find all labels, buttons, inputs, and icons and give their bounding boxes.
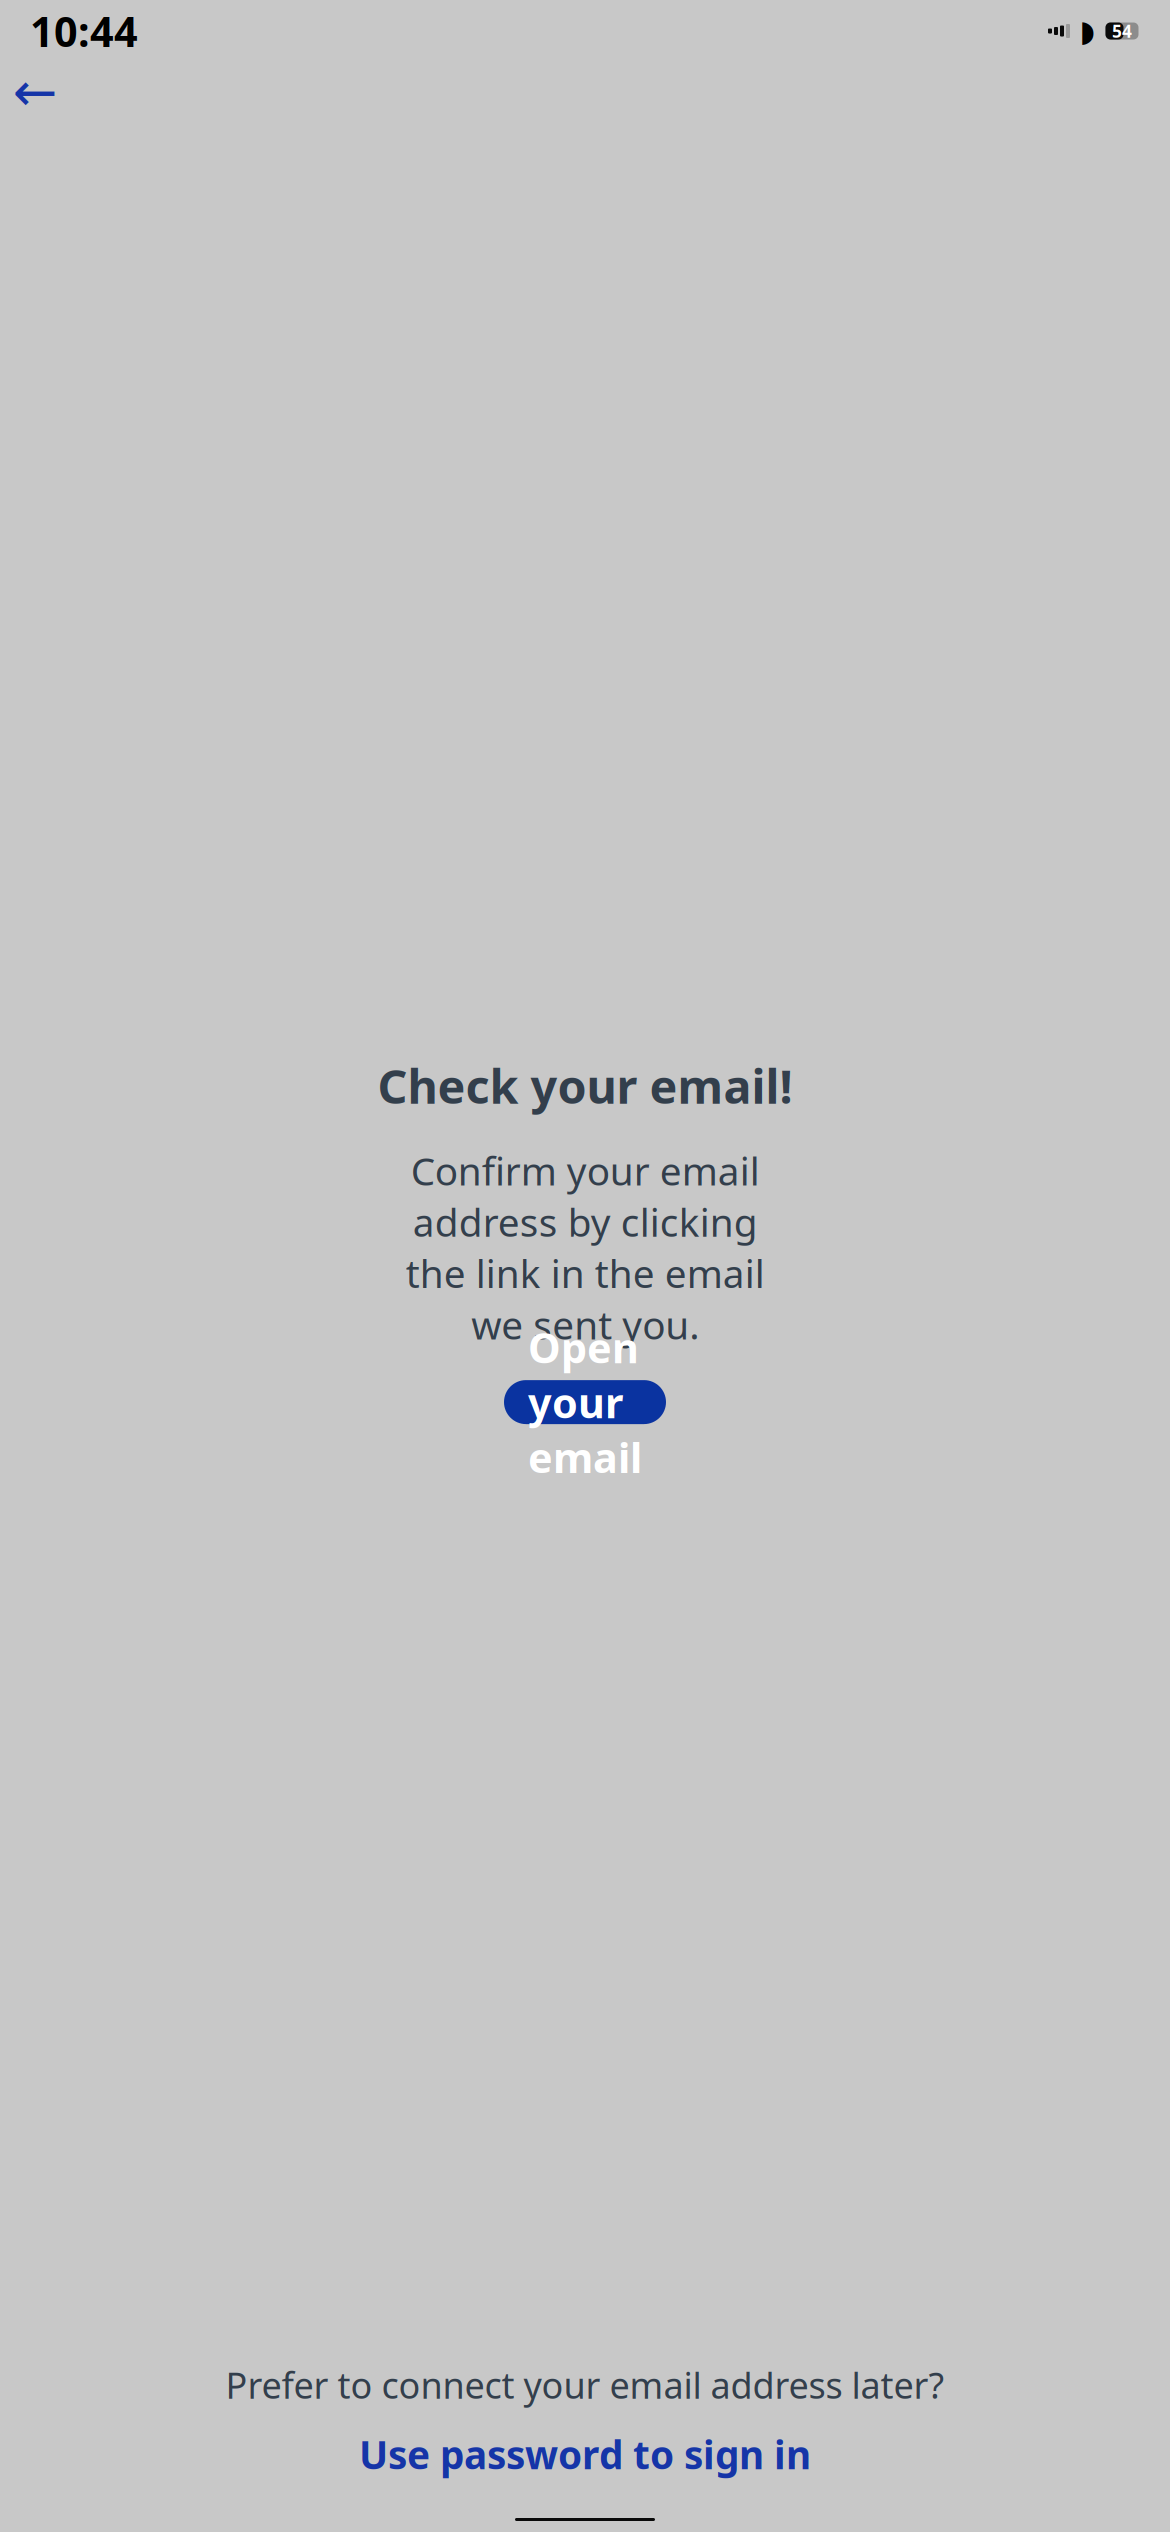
button[interactable]: Use password to sign in — [345, 2421, 825, 2488]
button[interactable]: Open your email — [504, 1380, 666, 1424]
staticText: Use password to sign in — [359, 2429, 811, 2480]
staticText: Confirm your email address by clicking t… — [405, 1145, 764, 1350]
staticText: ← — [12, 62, 57, 122]
staticText: Check your email! — [377, 1055, 792, 1117]
staticText: 54 — [1112, 19, 1132, 42]
staticText: Prefer to connect your email address lat… — [225, 2361, 944, 2409]
button[interactable]: Back — [4, 66, 66, 118]
staticText: ◗ — [1079, 14, 1094, 48]
staticText: Open your email — [528, 1320, 642, 1484]
staticText: 10:44 — [30, 4, 138, 58]
